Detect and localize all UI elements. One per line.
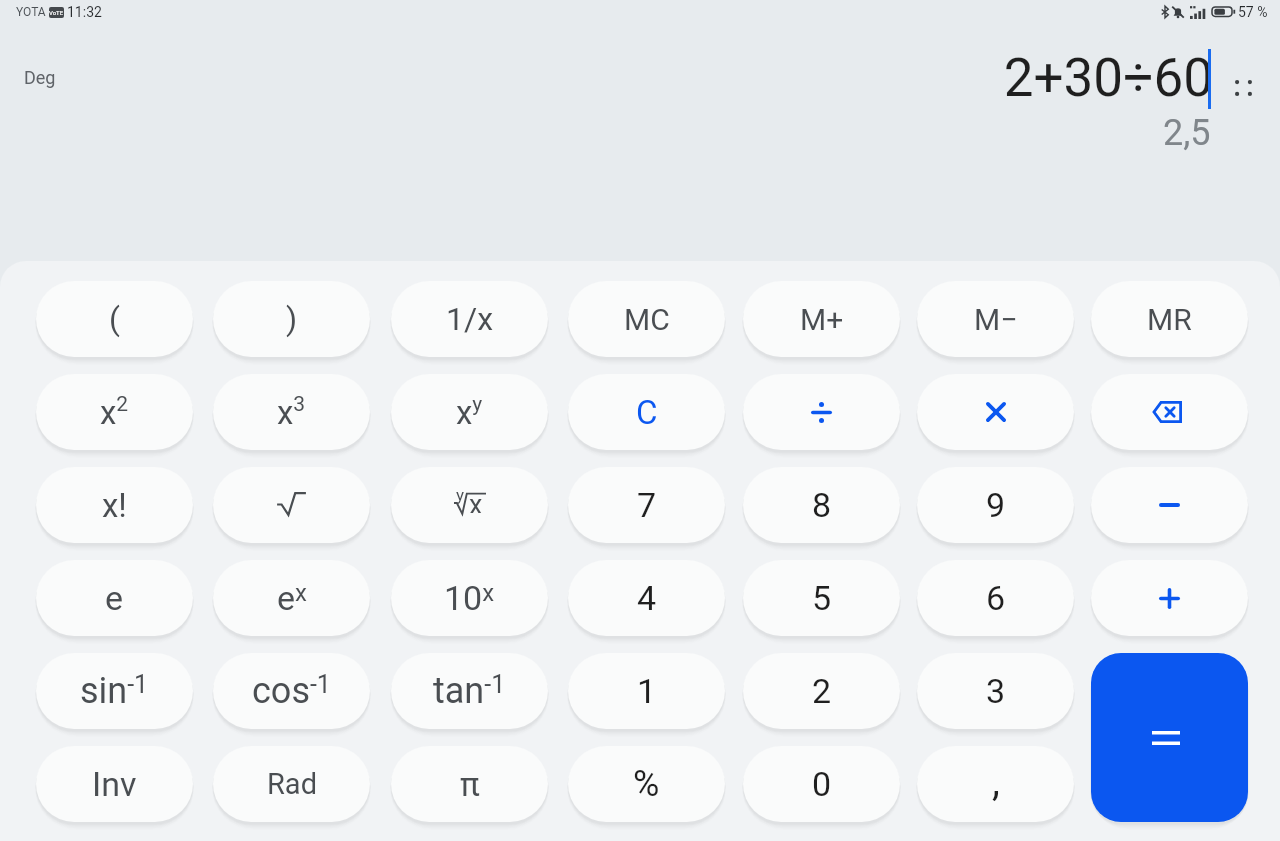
staticText: Deg bbox=[24, 67, 56, 88]
button[interactable]: cos-1 bbox=[213, 653, 370, 729]
button[interactable]: ) bbox=[213, 281, 370, 357]
button[interactable]: 1/x bbox=[391, 281, 548, 357]
staticText: xy bbox=[456, 392, 483, 432]
staticText: % bbox=[633, 763, 660, 805]
staticText: Inv bbox=[92, 764, 137, 804]
staticText: π bbox=[460, 765, 480, 804]
staticText: 1/x bbox=[446, 300, 494, 338]
button[interactable]: x! bbox=[36, 467, 193, 543]
staticText: x! bbox=[102, 486, 127, 525]
button[interactable]: MR bbox=[1091, 281, 1248, 357]
staticText: 0 bbox=[812, 764, 832, 804]
other: Divide bbox=[811, 402, 832, 423]
button[interactable]: % bbox=[568, 746, 725, 822]
staticText: , bbox=[992, 758, 1000, 805]
staticText: 2+30÷60 bbox=[1003, 47, 1213, 109]
other: Plus bbox=[1159, 588, 1180, 609]
button[interactable]: 8 bbox=[743, 467, 900, 543]
staticText: 5 bbox=[812, 578, 832, 618]
staticText: 11:32 bbox=[67, 4, 102, 20]
staticText: M+ bbox=[800, 302, 844, 337]
button[interactable]: y-th root of x bbox=[391, 467, 548, 543]
button[interactable]: Backspace bbox=[1091, 374, 1248, 450]
staticText: cos-1 bbox=[252, 670, 331, 712]
button[interactable]: 4 bbox=[568, 560, 725, 636]
other: Minus bbox=[1159, 503, 1180, 507]
button[interactable]: ex bbox=[213, 560, 370, 636]
button[interactable]: Deg bbox=[12, 57, 68, 98]
staticText: ex bbox=[277, 578, 307, 618]
staticText: 4 bbox=[637, 578, 657, 618]
staticText: sin-1 bbox=[80, 670, 149, 712]
staticText: Rad bbox=[267, 767, 317, 801]
staticText: x bbox=[469, 489, 483, 513]
staticText: MR bbox=[1147, 302, 1192, 337]
staticText: 9 bbox=[986, 485, 1006, 525]
staticText: 8 bbox=[812, 485, 832, 525]
staticText: M− bbox=[974, 302, 1018, 337]
staticText: 2,5 bbox=[1163, 112, 1211, 154]
button[interactable]: Equals bbox=[1091, 653, 1248, 822]
button[interactable]: 10x bbox=[391, 560, 548, 636]
button[interactable]: Minus bbox=[1091, 467, 1248, 543]
staticText: 57 % bbox=[1238, 4, 1268, 20]
button[interactable]: M+ bbox=[743, 281, 900, 357]
button[interactable]: x3 bbox=[213, 374, 370, 450]
button[interactable]: 2 bbox=[743, 653, 900, 729]
button[interactable]: π bbox=[391, 746, 548, 822]
staticText: ) bbox=[286, 300, 298, 338]
button[interactable]: 3 bbox=[917, 653, 1074, 729]
staticText: YOTA bbox=[16, 5, 46, 19]
button[interactable]: Divide bbox=[743, 374, 900, 450]
staticText: VoTE bbox=[49, 9, 64, 16]
other: y-th root of x bbox=[454, 490, 486, 514]
button[interactable]: e bbox=[36, 560, 193, 636]
staticText: 6 bbox=[986, 578, 1006, 618]
button[interactable]: MC bbox=[568, 281, 725, 357]
button[interactable]: 1 bbox=[568, 653, 725, 729]
button[interactable]: C bbox=[568, 374, 725, 450]
button[interactable]: ( bbox=[36, 281, 193, 357]
staticText: tan-1 bbox=[433, 670, 506, 712]
staticText: C bbox=[636, 393, 658, 432]
button[interactable]: M− bbox=[917, 281, 1074, 357]
staticText: 7 bbox=[637, 485, 657, 525]
staticText: y bbox=[456, 485, 465, 505]
button[interactable]: 9 bbox=[917, 467, 1074, 543]
button[interactable]: sin-1 bbox=[36, 653, 193, 729]
button[interactable]: Rad bbox=[213, 746, 370, 822]
button[interactable]: Square root bbox=[213, 467, 370, 543]
button[interactable]: , bbox=[917, 746, 1074, 822]
staticText: 3 bbox=[986, 671, 1006, 711]
other: Backspace bbox=[1152, 401, 1182, 423]
staticText: x2 bbox=[100, 392, 129, 432]
staticText: 2 bbox=[812, 671, 832, 711]
button[interactable]: History bbox=[1231, 76, 1255, 100]
button[interactable]: Multiply bbox=[917, 374, 1074, 450]
button[interactable]: Inv bbox=[36, 746, 193, 822]
other: Multiply bbox=[986, 402, 1006, 422]
other: Square root bbox=[276, 492, 307, 516]
button[interactable]: xy bbox=[391, 374, 548, 450]
button[interactable]: tan-1 bbox=[391, 653, 548, 729]
button[interactable]: x2 bbox=[36, 374, 193, 450]
staticText: x3 bbox=[277, 392, 306, 432]
staticText: ( bbox=[109, 300, 120, 338]
button[interactable]: Plus bbox=[1091, 560, 1248, 636]
button[interactable]: 5 bbox=[743, 560, 900, 636]
button[interactable]: 7 bbox=[568, 467, 725, 543]
staticText: 10x bbox=[444, 578, 495, 618]
button[interactable]: 6 bbox=[917, 560, 1074, 636]
button[interactable]: 0 bbox=[743, 746, 900, 822]
staticText: 1 bbox=[637, 671, 657, 711]
staticText: e bbox=[105, 578, 124, 618]
staticText: MC bbox=[624, 302, 670, 337]
